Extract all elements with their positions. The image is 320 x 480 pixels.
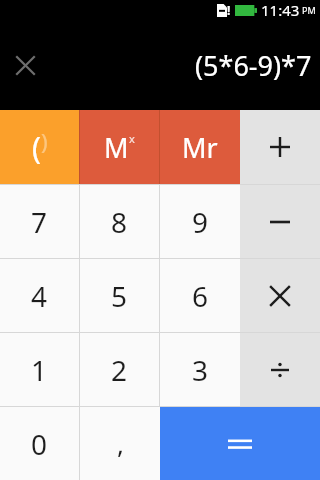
- staticText: !: [227, 2, 231, 18]
- button[interactable]: 8: [80, 185, 159, 258]
- staticText: 9: [192, 203, 209, 241]
- button[interactable]: 1: [0, 333, 79, 406]
- staticText: 6: [192, 277, 209, 315]
- button[interactable]: Plus: [240, 110, 320, 184]
- staticText: x: [129, 131, 135, 146]
- other: Minus: [270, 220, 290, 224]
- button[interactable]: 7: [0, 185, 79, 258]
- button[interactable]: [160, 407, 320, 480]
- button[interactable]: ,: [80, 407, 160, 480]
- staticText: PM: [302, 4, 316, 16]
- staticText: 4: [31, 277, 48, 315]
- other: Multiply: [271, 287, 289, 305]
- staticText: 7: [31, 203, 48, 241]
- button[interactable]: Divide: [240, 333, 320, 406]
- button[interactable]: M: [80, 110, 159, 184]
- button[interactable]: Minus: [240, 185, 320, 258]
- staticText: (: [32, 127, 41, 168]
- staticText: 8: [111, 203, 128, 241]
- button[interactable]: Multiply: [240, 259, 320, 332]
- button[interactable]: Mr: [160, 110, 240, 184]
- staticText: 2: [111, 351, 128, 389]
- staticText: 1: [31, 351, 48, 389]
- button[interactable]: 3: [160, 333, 240, 406]
- staticText: (5*6-9)*7: [195, 47, 312, 84]
- staticText: M: [104, 129, 129, 166]
- staticText: 0: [31, 425, 48, 463]
- button[interactable]: 0: [0, 407, 79, 480]
- button[interactable]: 2: [80, 333, 159, 406]
- button[interactable]: 9: [160, 185, 240, 258]
- staticText: ): [41, 126, 48, 156]
- button[interactable]: 6: [160, 259, 240, 332]
- button[interactable]: Clear: [9, 49, 41, 81]
- staticText: 5: [111, 277, 128, 315]
- button[interactable]: (: [0, 110, 79, 184]
- other: Plus: [270, 137, 290, 157]
- other: Divide: [271, 361, 289, 379]
- button[interactable]: 5: [80, 259, 159, 332]
- button[interactable]: 4: [0, 259, 79, 332]
- staticText: Mr: [182, 129, 218, 166]
- staticText: 3: [192, 351, 209, 389]
- staticText: 11:43: [261, 0, 300, 20]
- staticText: ,: [117, 426, 124, 461]
